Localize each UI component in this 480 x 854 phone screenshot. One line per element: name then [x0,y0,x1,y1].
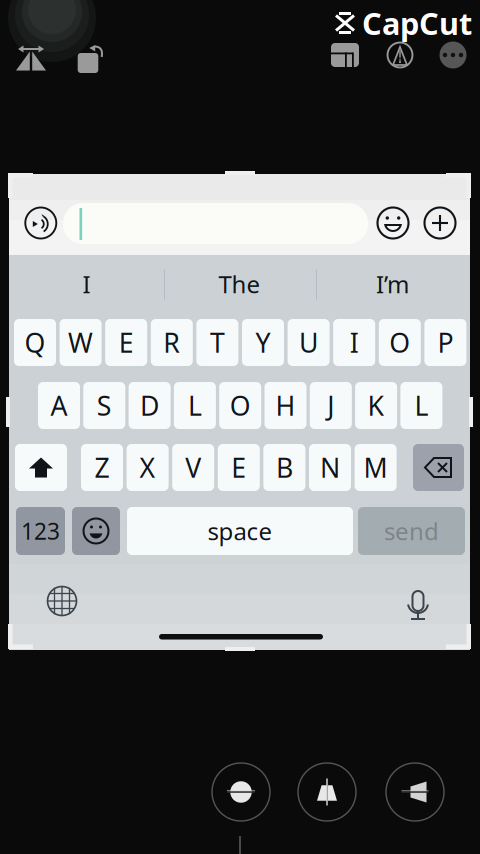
button[interactable]: I’m [315,254,470,314]
button[interactable]: D [129,382,171,429]
button[interactable]: Z [81,444,123,491]
button[interactable]: 123 [16,507,65,555]
button[interactable]: The [164,254,315,314]
button[interactable]: Shift [15,444,67,491]
staticText: I [82,268,90,300]
staticText: 123 [21,516,60,546]
staticText: A [50,388,67,423]
button[interactable]: Emoji [372,202,414,244]
staticText: L [188,388,202,423]
button[interactable]: send [358,507,465,555]
button[interactable]: Layout [323,34,367,76]
staticText: W [68,325,93,360]
staticText: O [389,325,410,360]
staticText: P [437,325,453,360]
staticText: H [275,388,295,423]
button[interactable]: More options [431,34,475,76]
staticText: X [140,450,156,485]
button[interactable]: R [151,319,193,366]
button[interactable]: L [400,382,442,429]
button[interactable]: O [219,382,261,429]
staticText: Q [24,325,45,360]
button[interactable]: T [196,319,238,366]
staticText: S [97,388,112,423]
button[interactable]: Skew [385,762,445,822]
button[interactable]: Flip horizontally [297,762,357,822]
button[interactable]: E [105,319,147,366]
button[interactable]: Flip vertically [211,762,271,822]
staticText: CapCut [362,3,472,43]
staticText: V [185,450,201,485]
button[interactable]: Flip horizontally [10,34,56,76]
button[interactable]: H [264,382,306,429]
staticText: E [119,325,134,360]
button[interactable]: J [310,382,352,429]
button[interactable]: Audio message [20,202,62,244]
staticText: J [327,388,334,423]
button[interactable]: E [218,444,260,491]
staticText: D [140,388,159,423]
button[interactable]: I [9,254,164,314]
button[interactable]: X [127,444,169,491]
staticText: space [207,515,272,547]
button[interactable]: Add attachment [419,202,461,244]
staticText: E [231,450,246,485]
button[interactable]: M [355,444,397,491]
button[interactable]: O [379,319,421,366]
button[interactable]: U [288,319,330,366]
button[interactable]: L [174,382,216,429]
staticText: U [299,325,318,360]
staticText: I’m [376,268,409,300]
button[interactable]: P [424,319,466,366]
staticText: R [163,325,180,360]
button[interactable]: S [83,382,125,429]
staticText: B [276,450,293,485]
button[interactable]: Draw [378,34,422,76]
staticText: T [210,325,225,360]
button[interactable]: N [309,444,351,491]
staticText: O [230,388,251,423]
staticText: L [414,388,428,423]
staticText: Z [94,450,109,485]
button[interactable]: Dictate [396,579,440,623]
button[interactable]: Emoji keyboard [72,507,120,555]
staticText: N [320,450,340,485]
button[interactable]: V [172,444,214,491]
staticText: send [384,515,439,547]
staticText: K [368,388,385,423]
staticText: I [350,325,359,360]
staticText: M [364,450,388,485]
button[interactable]: Switch keyboard [40,579,84,623]
button[interactable]: A [38,382,80,429]
button[interactable]: Q [14,319,56,366]
button[interactable]: space [127,507,353,555]
button[interactable]: Rotate [65,34,111,76]
button[interactable]: Y [242,319,284,366]
staticText: Y [255,325,270,360]
button[interactable]: I [333,319,375,366]
staticText: The [218,268,260,300]
button[interactable]: B [263,444,305,491]
button[interactable]: W [60,319,102,366]
button[interactable]: Delete [413,444,464,491]
button[interactable]: K [355,382,397,429]
